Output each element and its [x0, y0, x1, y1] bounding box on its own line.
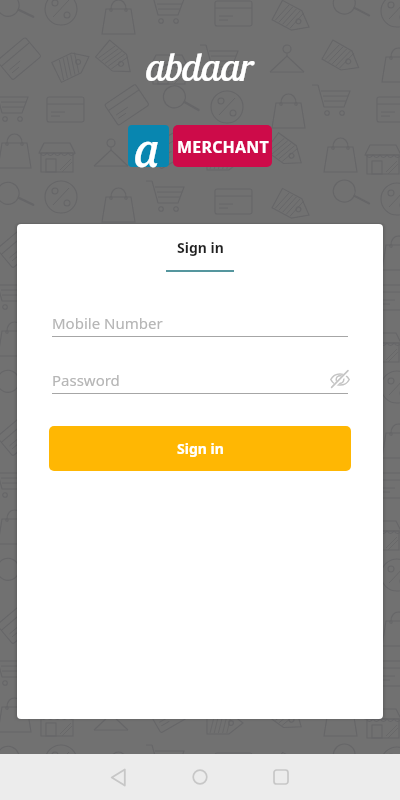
button[interactable]: Show password [329, 369, 351, 389]
button[interactable]: Password [52, 369, 348, 399]
button[interactable]: Mobile Number [52, 312, 348, 342]
button[interactable]: Sign in [49, 426, 351, 471]
staticText: Sign in [177, 238, 224, 257]
button[interactable]: Back [98, 762, 138, 792]
staticText: abdaar [146, 41, 254, 91]
button[interactable]: Recent apps [261, 762, 301, 792]
staticText: a [135, 117, 160, 180]
button[interactable]: Sign in [150, 224, 250, 280]
staticText: Password [52, 370, 120, 390]
button[interactable]: Home [180, 762, 220, 792]
button[interactable]: abdaar logo [128, 125, 169, 167]
staticText: Sign in [177, 439, 224, 458]
staticText: Mobile Number [52, 313, 163, 333]
staticText: MERCHANT [177, 136, 269, 158]
